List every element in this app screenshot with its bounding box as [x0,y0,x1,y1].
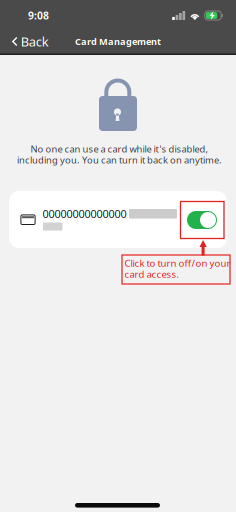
staticText: card access. [124,267,179,281]
button[interactable]: Back [0,28,57,55]
staticText: Click to turn off/on your [124,256,230,270]
staticText: Card Management [75,35,161,48]
staticText: including you. You can turn it back on a… [17,153,222,166]
staticText: 00000000000000 [42,206,126,221]
staticText: Back [21,33,49,50]
staticText: 9:08 [28,8,49,23]
staticText: No one can use a card while it's disable… [30,142,208,155]
button[interactable] [181,205,223,235]
